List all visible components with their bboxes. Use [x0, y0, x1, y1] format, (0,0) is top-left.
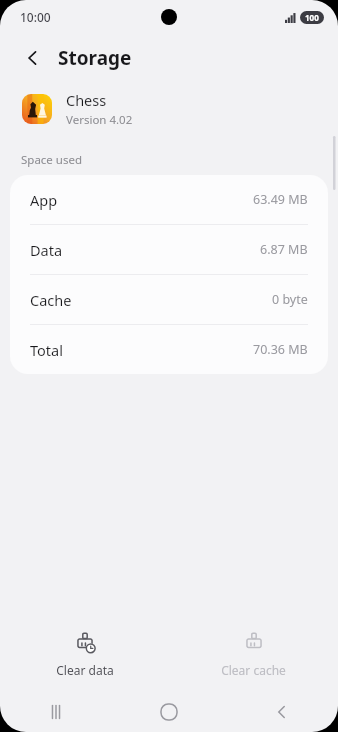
staticText: Version 4.02: [66, 112, 133, 128]
button[interactable]: App: [10, 175, 328, 224]
staticText: Space used: [21, 152, 83, 168]
button[interactable]: Data: [10, 225, 328, 274]
button[interactable]: Home: [112, 692, 225, 732]
staticText: App: [30, 190, 58, 210]
staticText: Clear cache: [221, 662, 286, 678]
button[interactable]: Total: [10, 325, 328, 374]
button[interactable]: Recents: [0, 692, 112, 732]
staticText: Clear data: [56, 662, 114, 678]
button[interactable]: Back: [16, 41, 50, 75]
staticText: 70.36 MB: [253, 341, 308, 358]
staticText: Cache: [30, 290, 72, 310]
staticText: 0 byte: [272, 291, 308, 308]
staticText: Chess: [66, 90, 107, 110]
button[interactable]: Clear data: [0, 624, 169, 686]
button[interactable]: Cache: [10, 275, 328, 324]
staticText: 63.49 MB: [253, 191, 308, 208]
staticText: 10:00: [20, 9, 51, 25]
staticText: Total: [30, 340, 63, 360]
button[interactable]: Back: [225, 692, 338, 732]
button[interactable]: Clear cache: [169, 624, 338, 686]
staticText: 6.87 MB: [260, 241, 308, 258]
staticText: 100: [305, 12, 319, 23]
staticText: Storage: [58, 45, 132, 71]
staticText: Data: [30, 240, 63, 260]
